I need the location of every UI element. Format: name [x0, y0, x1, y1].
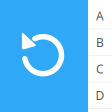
staticText: D: [95, 87, 104, 103]
button[interactable]: A: [88, 3, 112, 29]
staticText: B: [96, 34, 104, 50]
staticText: A: [96, 8, 104, 24]
button[interactable]: Undo: [0, 0, 88, 112]
button[interactable]: B: [88, 29, 112, 56]
staticText: C: [96, 61, 104, 77]
button[interactable]: D: [88, 82, 112, 109]
button[interactable]: C: [88, 56, 112, 82]
